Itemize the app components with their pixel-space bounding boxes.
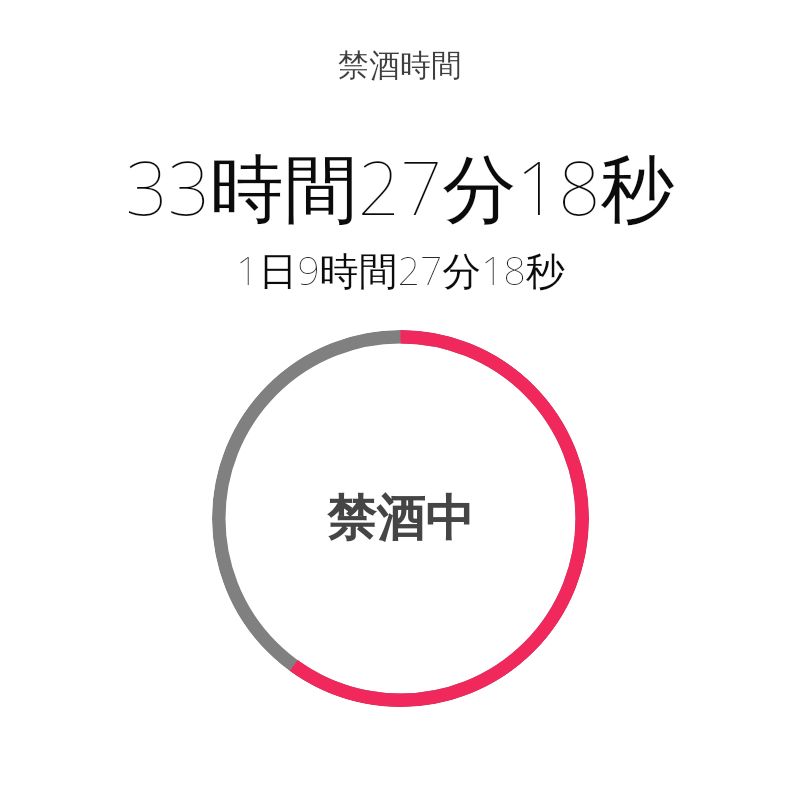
staticText: 33時間27分18秒 xyxy=(125,136,675,237)
staticText: 1日9時間27分18秒 xyxy=(236,243,565,296)
staticText: 禁酒時間 xyxy=(338,46,462,85)
staticText: 禁酒中 xyxy=(327,488,474,550)
button[interactable]: 禁酒時間 xyxy=(0,46,800,85)
button[interactable]: 禁酒中 進捗リング xyxy=(212,330,589,707)
